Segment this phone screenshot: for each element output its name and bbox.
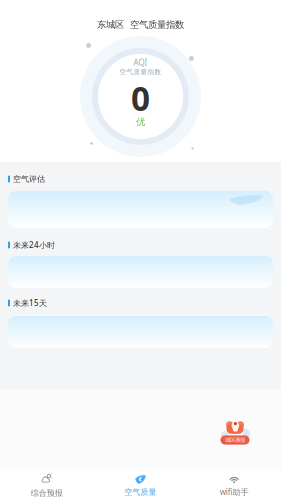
button[interactable]: 城区播报: [219, 411, 251, 443]
staticText: 优: [136, 116, 145, 128]
staticText: 综合预报: [31, 488, 63, 498]
staticText: 0: [131, 76, 150, 120]
staticText: 未来24小时: [13, 240, 55, 250]
button[interactable]: 综合预报: [0, 471, 94, 500]
staticText: 空气评估: [13, 174, 45, 184]
staticText: wifi助手: [220, 487, 249, 497]
button[interactable]: 空气质量: [94, 471, 187, 500]
staticText: 东城区 空气质量指数: [97, 19, 184, 30]
button[interactable]: wifi助手: [187, 471, 281, 500]
staticText: 未来15天: [13, 298, 47, 308]
staticText: 城区播报: [225, 437, 245, 443]
staticText: 空气质量指数: [119, 68, 161, 76]
staticText: 空气质量: [124, 487, 156, 497]
staticText: AQI: [133, 57, 147, 68]
